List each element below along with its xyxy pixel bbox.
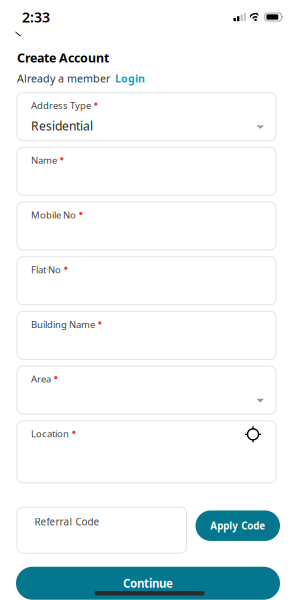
staticText: Already a member xyxy=(17,71,110,85)
button[interactable]: Back xyxy=(0,22,30,40)
staticText: Location xyxy=(31,427,69,440)
button[interactable]: Building Name xyxy=(17,311,276,359)
staticText: Area xyxy=(31,373,51,385)
staticText: Referral Code xyxy=(34,515,99,528)
staticText: Flat No xyxy=(31,263,61,276)
button[interactable]: Mobile No xyxy=(17,202,276,250)
button[interactable]: Login xyxy=(115,71,145,85)
staticText: Login xyxy=(115,71,145,85)
staticText: Mobile No xyxy=(31,208,76,221)
staticText: Continue xyxy=(123,576,173,591)
staticText: 2:33 xyxy=(22,8,50,26)
button[interactable]: Apply Code xyxy=(195,510,280,541)
staticText: Address Type xyxy=(31,99,91,112)
button[interactable]: Area xyxy=(17,366,276,414)
staticText: Residential xyxy=(31,118,93,134)
button[interactable]: Name xyxy=(17,147,276,195)
button[interactable]: Flat No xyxy=(17,257,276,305)
button[interactable]: Location xyxy=(17,421,276,483)
staticText: Building Name xyxy=(31,318,95,330)
button[interactable]: Address Type xyxy=(17,93,276,141)
staticText: Apply Code xyxy=(210,519,265,532)
staticText: Create Account xyxy=(17,49,109,66)
staticText: Name xyxy=(31,154,57,166)
button[interactable]: Continue xyxy=(16,567,280,600)
